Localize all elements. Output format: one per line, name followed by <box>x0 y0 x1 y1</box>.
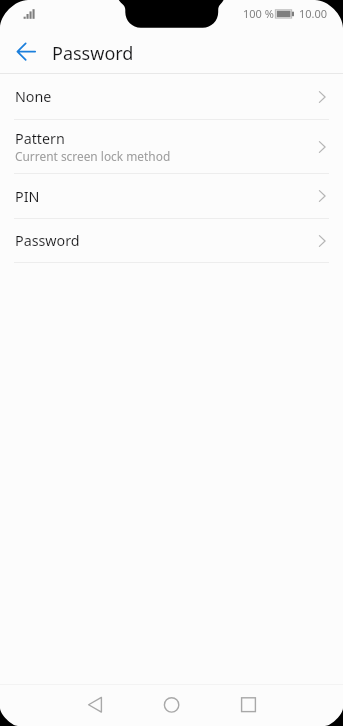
button[interactable]: Password <box>0 219 343 262</box>
staticText: PIN <box>15 187 40 206</box>
staticText: Password <box>15 231 80 250</box>
button[interactable]: Home <box>155 685 187 717</box>
staticText: 100 % <box>243 6 274 21</box>
staticText: Current screen lock method <box>15 148 171 164</box>
button[interactable]: Back <box>8 32 44 68</box>
staticText: Password <box>52 41 134 66</box>
staticText: None <box>15 87 52 106</box>
button[interactable]: Back <box>79 685 111 717</box>
staticText: 10.00 <box>299 6 328 21</box>
button[interactable]: None <box>0 74 343 119</box>
staticText: Pattern <box>15 129 65 148</box>
button[interactable]: PIN <box>0 174 343 218</box>
button[interactable]: Pattern <box>0 120 343 173</box>
button[interactable]: Recent apps <box>232 685 264 717</box>
